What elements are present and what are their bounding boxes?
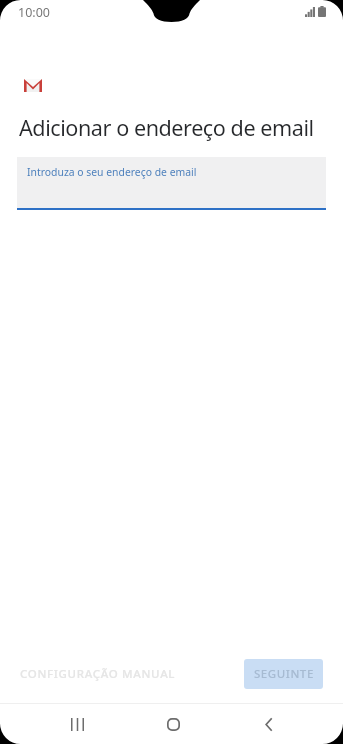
button[interactable]: Recent apps bbox=[43, 704, 111, 744]
button[interactable]: Back bbox=[234, 704, 302, 744]
staticText: SEGUINTE bbox=[254, 666, 314, 682]
staticText: Introduza o seu endereço de email bbox=[27, 165, 197, 179]
staticText: CONFIGURAÇÃO MANUAL bbox=[20, 666, 176, 682]
button[interactable]: Introduza o seu endereço de email bbox=[17, 157, 326, 210]
staticText: Adicionar o endereço de email bbox=[19, 113, 314, 142]
button[interactable]: SEGUINTE bbox=[244, 659, 323, 689]
staticText: 10:00 bbox=[18, 4, 50, 21]
button[interactable]: CONFIGURAÇÃO MANUAL bbox=[13, 659, 183, 689]
button[interactable]: Home bbox=[139, 704, 207, 744]
